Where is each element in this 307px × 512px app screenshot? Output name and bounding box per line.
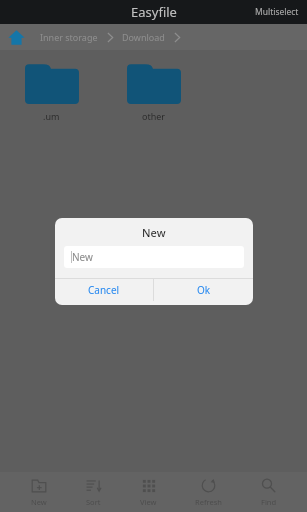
staticText: .um <box>43 110 60 122</box>
staticText: New <box>72 250 93 264</box>
button[interactable]: Inner storage <box>38 27 100 47</box>
staticText: Ok <box>197 283 211 297</box>
button[interactable]: Ok <box>154 279 253 301</box>
button[interactable]: Sort <box>77 474 110 510</box>
staticText: Easyfile <box>131 3 177 21</box>
staticText: Inner storage <box>40 31 98 43</box>
staticText: Download <box>122 31 165 43</box>
staticText: Refresh <box>195 497 222 507</box>
staticText: Find <box>261 497 277 507</box>
button[interactable]: Home <box>0 27 30 47</box>
button[interactable]: New <box>64 246 244 268</box>
staticText: New <box>142 225 166 240</box>
button[interactable]: View <box>132 474 165 510</box>
staticText: other <box>142 110 166 122</box>
button[interactable]: Find <box>252 474 285 510</box>
button[interactable]: Download <box>120 27 167 47</box>
button[interactable]: other <box>103 58 205 126</box>
button[interactable]: Refresh <box>187 474 230 510</box>
button[interactable]: New <box>22 474 55 510</box>
button[interactable]: .um <box>0 58 103 126</box>
staticText: Multiselect <box>255 6 299 18</box>
staticText: Sort <box>86 497 101 507</box>
button[interactable]: Multiselect <box>247 2 307 22</box>
button[interactable]: Cancel <box>55 279 153 301</box>
staticText: View <box>140 497 157 507</box>
staticText: New <box>31 497 47 507</box>
staticText: Cancel <box>88 283 120 297</box>
